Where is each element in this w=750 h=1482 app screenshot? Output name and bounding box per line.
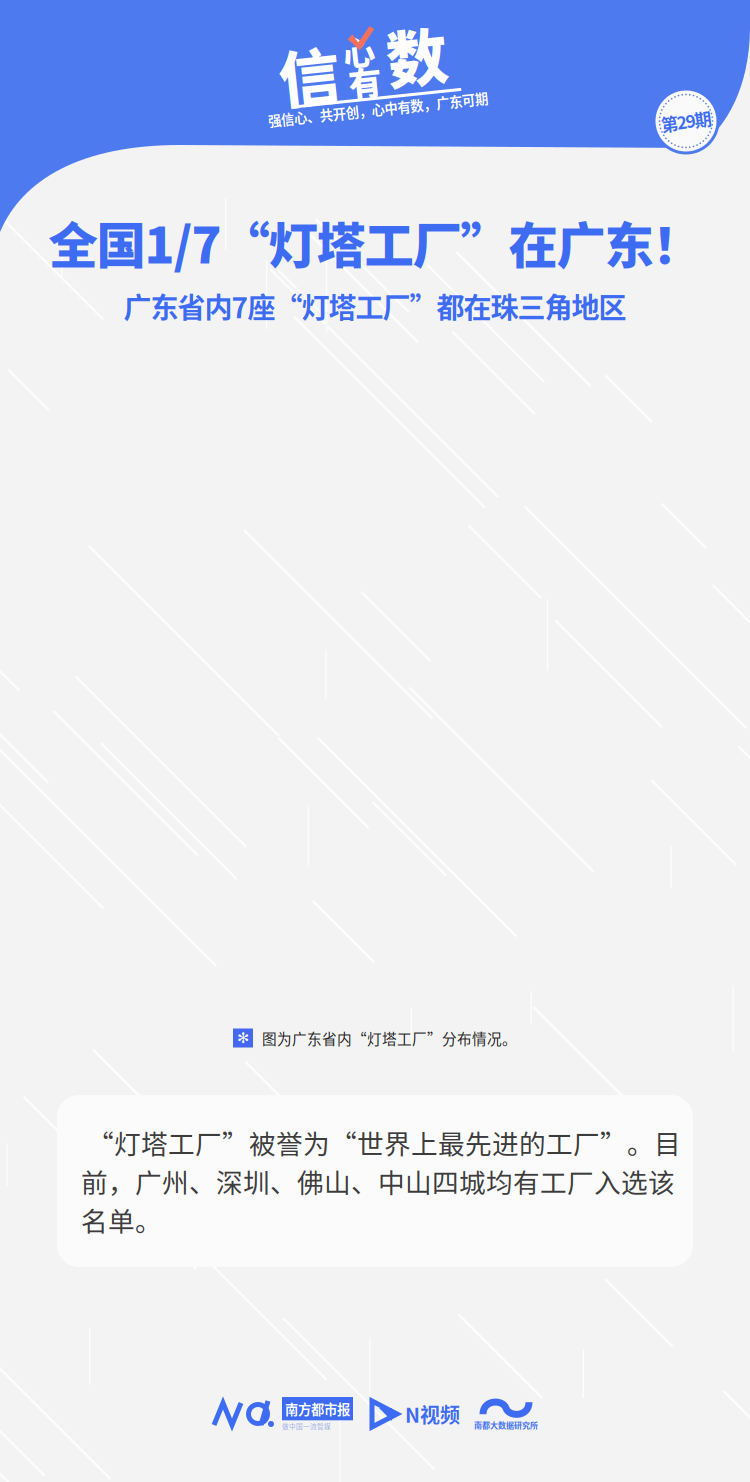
staticText: 第29期 bbox=[661, 108, 711, 134]
button[interactable]: N视频 bbox=[369, 1397, 460, 1431]
staticText: 有 bbox=[347, 57, 380, 105]
staticText: “灯塔工厂”被誉为“世界上最先进的工厂”。目 bbox=[81, 1123, 681, 1162]
staticText: 广东省内7座“灯塔工厂”都在珠三角地区 bbox=[123, 286, 626, 326]
staticText: 数 bbox=[387, 16, 448, 104]
button[interactable]: 南方都市报 bbox=[212, 1397, 353, 1431]
staticText: 南都大数据研究所 bbox=[474, 1419, 538, 1431]
staticText: 图为广东省内“灯塔工厂”分布情况。 bbox=[262, 1027, 517, 1049]
staticText: 信 bbox=[278, 24, 339, 112]
staticText: 强信心、共开创，心中有数，广东可期 bbox=[263, 100, 484, 120]
staticText: 名单。 bbox=[81, 1200, 162, 1239]
staticText: ✻ bbox=[237, 1029, 249, 1047]
staticText: 前，广州、深圳、佛山、中山四城均有工厂入选该 bbox=[81, 1162, 675, 1200]
staticText: 南方都市报 bbox=[285, 1399, 350, 1418]
button[interactable]: 第29期 bbox=[652, 87, 720, 155]
button[interactable]: 南都大数据研究所 bbox=[474, 1397, 538, 1431]
staticText: 心 bbox=[345, 27, 377, 73]
staticText: N视频 bbox=[405, 1399, 460, 1428]
staticText: 做中国一流智媒 bbox=[282, 1421, 331, 1431]
staticText: 全国1/7“灯塔工厂”在广东！ bbox=[48, 206, 701, 278]
